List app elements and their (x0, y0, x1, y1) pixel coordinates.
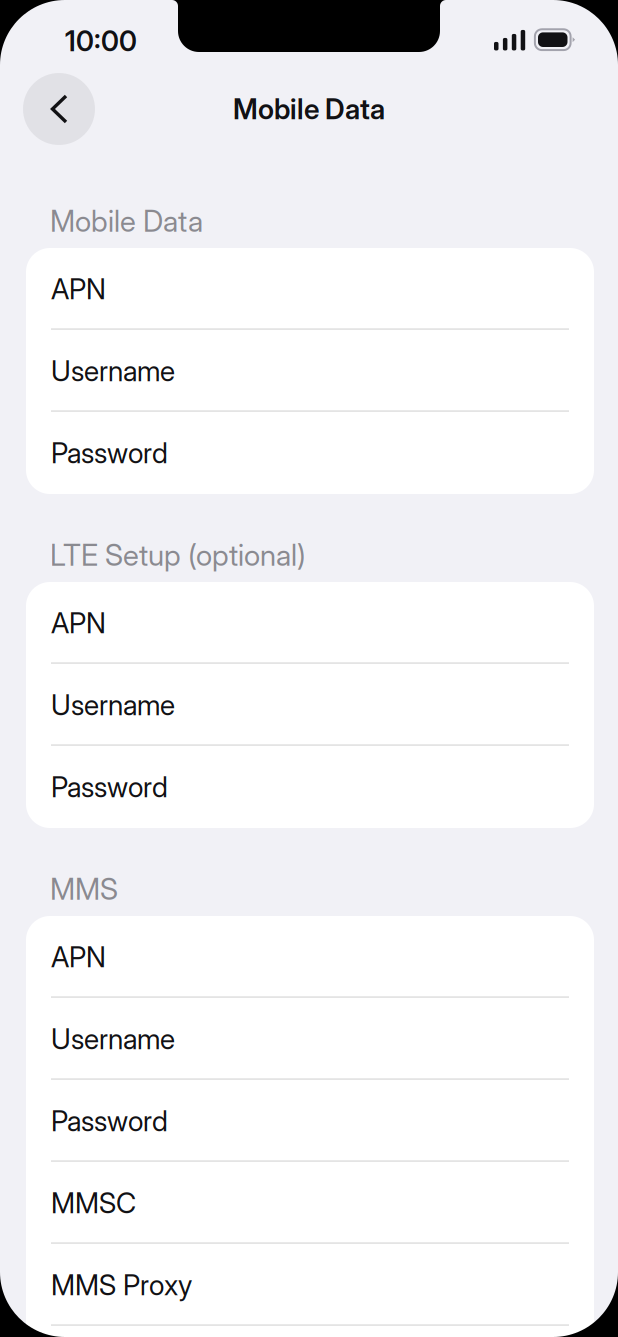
button[interactable]: Password (26, 746, 594, 828)
staticText: MMS (50, 871, 118, 907)
button[interactable]: Password (26, 412, 594, 494)
staticText: Password (51, 436, 168, 470)
staticText: MMS Proxy (51, 1268, 192, 1302)
staticText: Username (51, 354, 175, 388)
button[interactable]: Max Message Size (26, 1326, 594, 1337)
staticText: 10:00 (65, 24, 137, 58)
button[interactable]: MMS Proxy (26, 1244, 594, 1326)
button[interactable]: APN (26, 916, 594, 998)
staticText: Password (51, 1104, 168, 1138)
button[interactable]: Username (26, 998, 594, 1080)
staticText: Password (51, 770, 168, 804)
staticText: APN (51, 606, 106, 640)
staticText: LTE Setup (optional) (50, 537, 306, 573)
staticText: Username (51, 688, 175, 722)
button[interactable]: MMSC (26, 1162, 594, 1244)
staticText: APN (51, 940, 106, 974)
button[interactable]: Username (26, 330, 594, 412)
button[interactable]: APN (26, 582, 594, 664)
button[interactable]: Username (26, 664, 594, 746)
staticText: Username (51, 1022, 175, 1056)
staticText: MMSC (51, 1186, 136, 1220)
staticText: Mobile Data (50, 203, 203, 239)
button[interactable]: Back (23, 73, 95, 145)
button[interactable]: APN (26, 248, 594, 330)
staticText: Mobile Data (233, 92, 385, 126)
button[interactable]: Password (26, 1080, 594, 1162)
staticText: APN (51, 272, 106, 306)
